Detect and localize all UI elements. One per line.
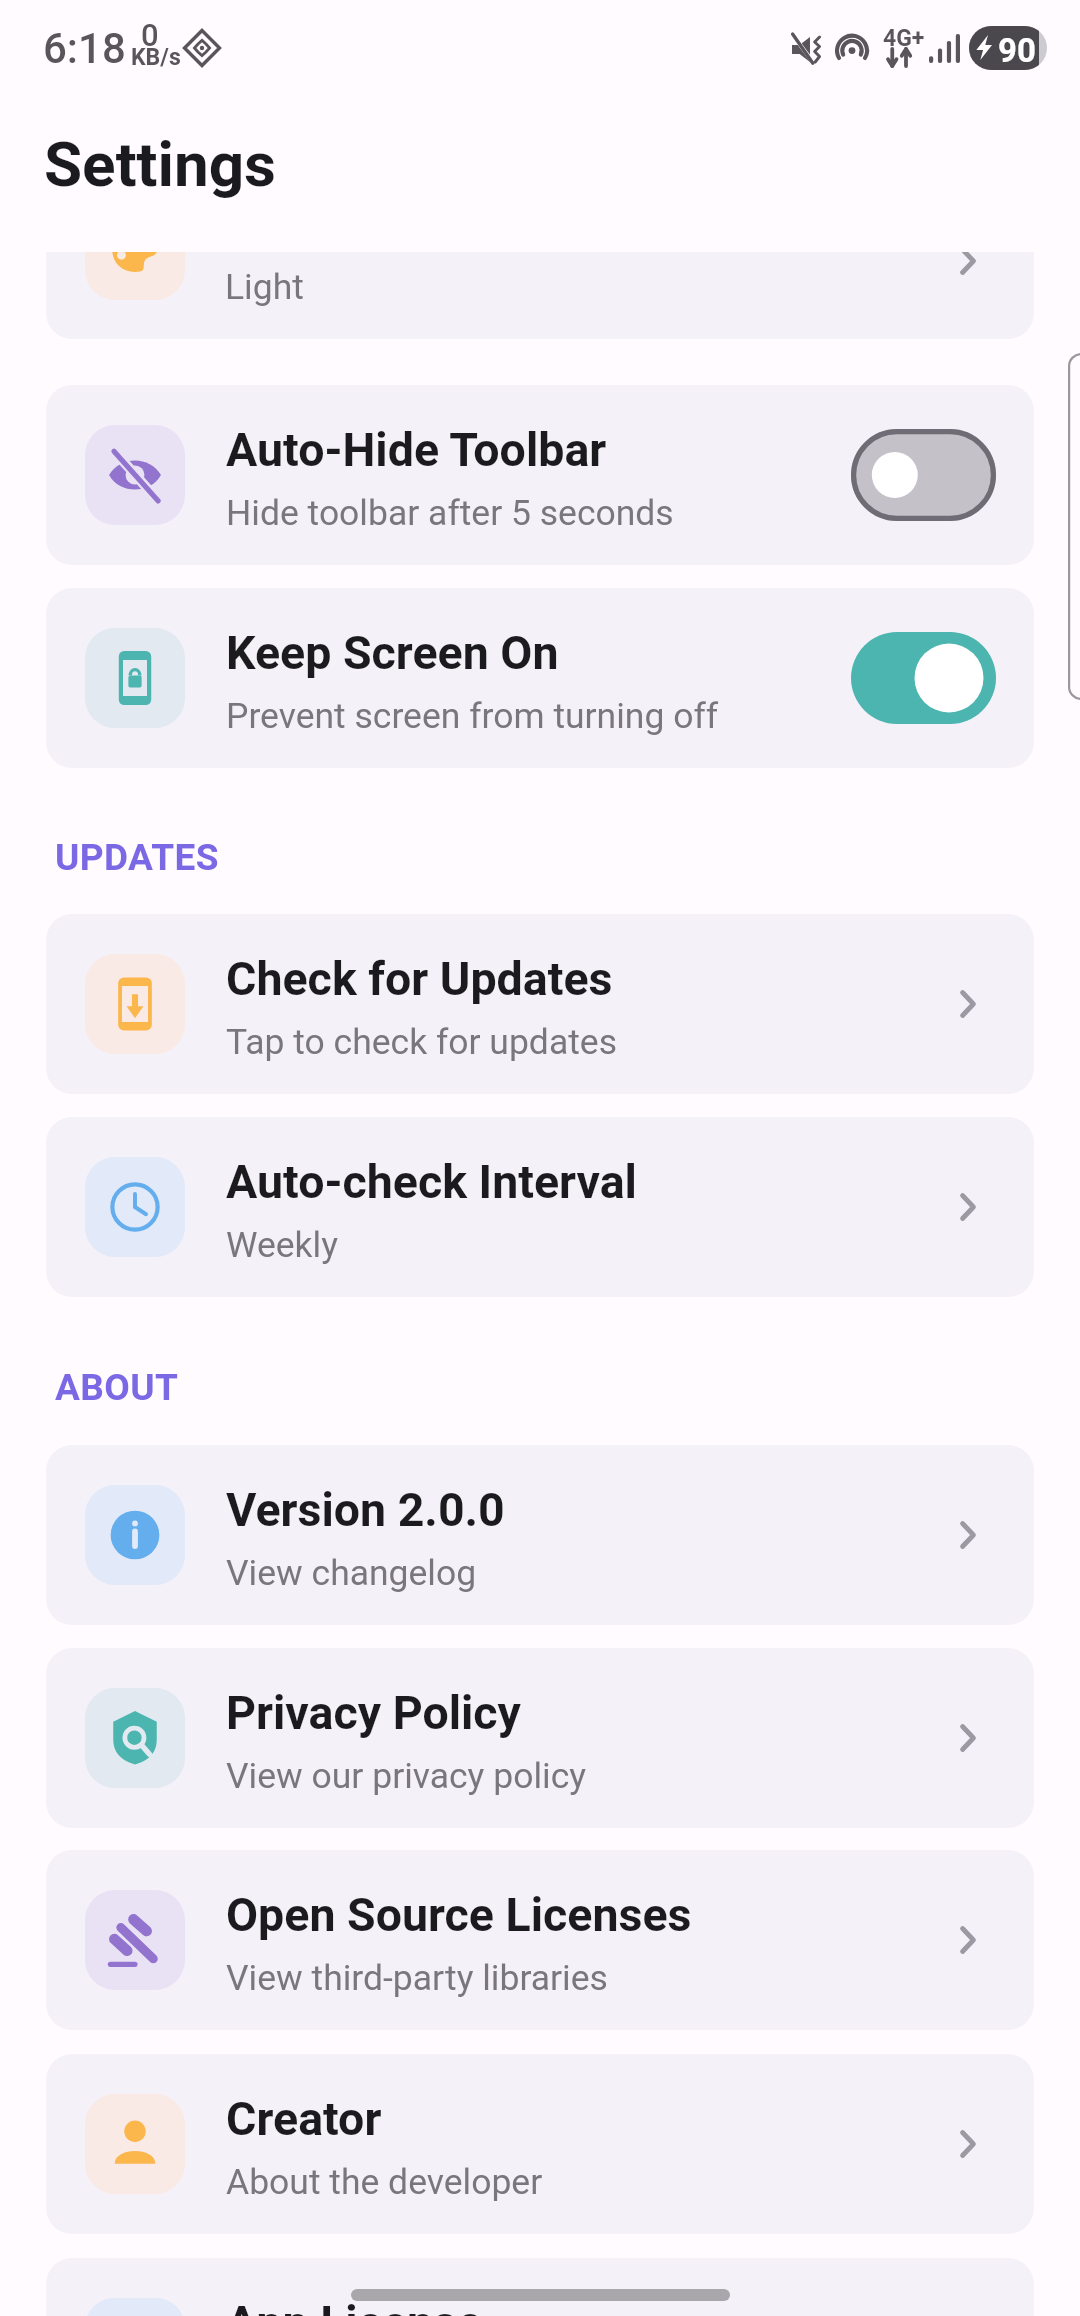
staticText: View changelog [226,1552,477,1594]
staticText: Keep Screen On [226,626,559,680]
button[interactable]: Version 2.0.0 [46,1445,1034,1625]
other: Silent mode [792,37,821,62]
other: Open Creator [960,2130,976,2158]
staticText: Settings [44,128,277,201]
staticText: 4G+ [883,25,925,52]
staticText: KB/s [131,44,181,71]
other: Hotspot [835,33,869,65]
button[interactable]: Keep Screen On on [851,632,996,724]
staticText: View third-party libraries [226,1957,608,1999]
staticText: Auto-Hide Toolbar [226,423,607,477]
staticText: About the developer [226,2161,543,2203]
staticText: ABOUT [55,1366,179,1409]
staticText: Creator [226,2092,382,2146]
button[interactable]: App License [46,2258,1034,2316]
staticText: Prevent screen from turning off [226,695,719,737]
other: Open Check for Updates [960,990,976,1018]
staticText: Weekly [226,1224,339,1266]
button[interactable]: Auto-Hide Toolbar off [851,429,996,521]
button[interactable]: Auto-check Interval [46,1117,1034,1297]
other: Open Auto-check Interval [960,1193,976,1221]
staticText: 90 [998,31,1036,70]
other: Open Version 2.0.0 [960,1521,976,1549]
button[interactable]: Creator [46,2054,1034,2234]
button[interactable]: Auto-Hide Toolbar [46,385,1034,565]
staticText: App License [226,2296,483,2316]
staticText: Tap to check for updates [226,1021,617,1063]
staticText: Privacy Policy [226,1686,521,1740]
button[interactable]: Keep Screen On [46,588,1034,768]
button[interactable]: Privacy Policy [46,1648,1034,1828]
other: Signal strength [929,34,960,63]
staticText: Auto-check Interval [226,1155,637,1209]
staticText: View our privacy policy [226,1755,587,1797]
staticText: 0 [141,17,159,53]
other: Open theme [960,252,976,275]
button[interactable]: Check for Updates [46,914,1034,1094]
staticText: Open Source Licenses [226,1888,692,1942]
staticText: Check for Updates [226,952,613,1006]
staticText: Version 2.0.0 [226,1483,505,1537]
other: Open Open Source Licenses [960,1926,976,1954]
staticText: 6:18 [43,24,126,73]
other: Open Privacy Policy [960,1724,976,1752]
staticText: UPDATES [55,836,219,879]
button[interactable]: Open Source Licenses [46,1850,1034,2030]
staticText: Light [225,266,304,308]
button[interactable]: Light [46,252,1034,339]
staticText: Hide toolbar after 5 seconds [226,492,674,534]
